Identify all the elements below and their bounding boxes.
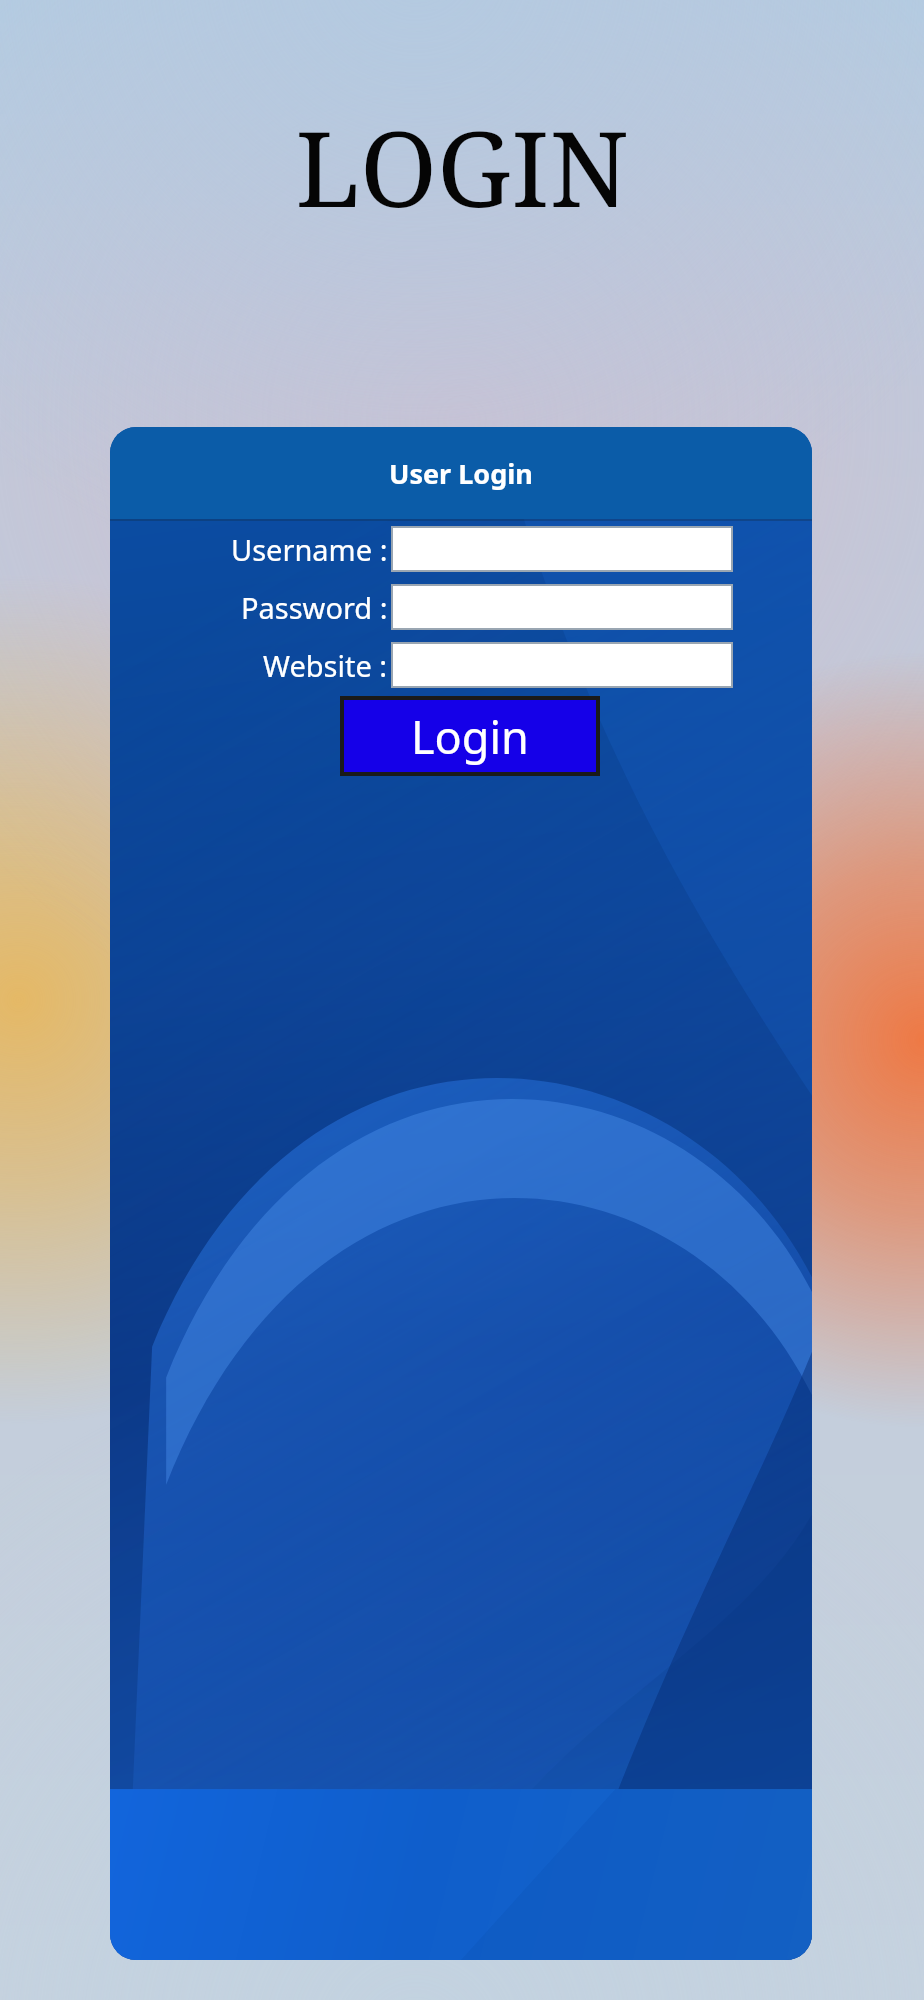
staticText: Password : <box>241 588 388 627</box>
staticText: Login <box>411 706 529 767</box>
staticText: User Login <box>389 455 533 492</box>
staticText: Username : <box>231 530 388 569</box>
button[interactable]: Login <box>344 700 596 772</box>
staticText: LOGIN <box>295 96 629 238</box>
staticText: Website : <box>263 646 388 685</box>
